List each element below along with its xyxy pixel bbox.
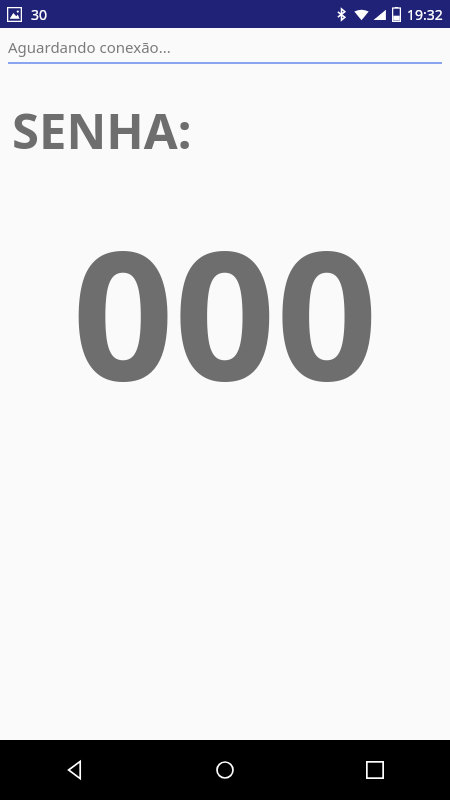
staticText: 30 xyxy=(31,5,48,24)
staticText: 19:32 xyxy=(407,5,443,24)
button[interactable]: Recent apps xyxy=(344,740,406,800)
staticText: 000 xyxy=(0,190,450,432)
button[interactable]: Back xyxy=(44,740,106,800)
staticText: Aguardando conexão... xyxy=(8,37,171,57)
staticText: SENHA: xyxy=(12,97,192,164)
button[interactable]: Home xyxy=(194,740,256,800)
button[interactable]: Aguardando conexão... xyxy=(8,37,442,64)
